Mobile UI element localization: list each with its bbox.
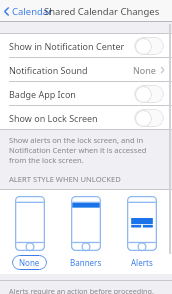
button[interactable]: Banners [60,196,112,270]
button[interactable]: Show in Notification Center [0,34,172,57]
button[interactable]: Toggle [134,85,164,103]
staticText: Calendar [12,5,53,18]
staticText: Show in Notification Center [9,40,125,52]
button[interactable]: Show on Lock Screen [0,106,172,129]
button[interactable]: Toggle [134,109,164,127]
staticText: ALERT STYLE WHEN UNLOCKED [9,174,121,184]
staticText: Alerts require an action before proceedi… [9,286,154,294]
staticText: Notification Sound [9,64,88,76]
staticText: Badge App Icon [9,88,76,100]
staticText: Alerts [131,257,153,268]
staticText: None [19,257,40,268]
button[interactable]: Alerts [121,196,163,270]
button[interactable]: Toggle [134,37,164,55]
staticText: Show alerts on the lock screen, and in N… [9,135,164,165]
staticText: Shared Calendar Changes [44,5,160,18]
staticText: None [133,64,156,76]
button[interactable]: Notification Sound [0,58,172,81]
button[interactable]: None [9,196,50,270]
button[interactable]: Calendar [0,3,57,20]
staticText: Show on Lock Screen [9,112,98,124]
button[interactable]: Badge App Icon [0,82,172,105]
staticText: Banners [70,257,102,268]
